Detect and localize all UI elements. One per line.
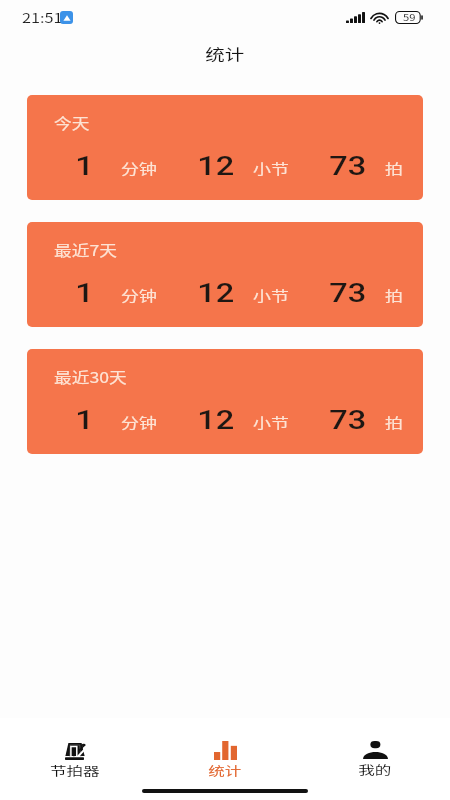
staticText: 小节 xyxy=(253,412,289,432)
staticText: 分钟 xyxy=(121,285,157,305)
staticText: 拍 xyxy=(385,285,403,305)
staticText: 节拍器 xyxy=(50,762,101,779)
button[interactable]: 今天 xyxy=(27,95,423,200)
button[interactable]: Statistics xyxy=(150,718,300,779)
staticText: 拍 xyxy=(385,158,403,178)
button[interactable]: 最近30天 xyxy=(27,349,423,454)
other: Statistics xyxy=(214,741,237,760)
staticText: 12 xyxy=(197,278,235,308)
staticText: 统计 xyxy=(205,43,246,65)
button[interactable]: Metronome xyxy=(0,718,150,779)
staticText: 21:51 xyxy=(22,8,63,27)
staticText: 1 xyxy=(75,405,94,435)
staticText: 73 xyxy=(329,151,367,181)
staticText: 统计 xyxy=(208,762,243,779)
other: Metronome xyxy=(65,741,85,760)
staticText: 12 xyxy=(197,151,235,181)
staticText: 73 xyxy=(329,278,367,308)
staticText: 73 xyxy=(329,405,367,435)
button[interactable]: 最近7天 xyxy=(27,222,423,327)
staticText: 分钟 xyxy=(121,412,157,432)
staticText: 最近30天 xyxy=(54,366,127,387)
staticText: 最近7天 xyxy=(54,239,117,260)
staticText: 分钟 xyxy=(121,158,157,178)
staticText: 我的 xyxy=(358,761,393,778)
staticText: 拍 xyxy=(385,412,403,432)
staticText: 小节 xyxy=(253,285,289,305)
staticText: 59 xyxy=(403,11,415,24)
staticText: 今天 xyxy=(54,112,89,133)
staticText: 1 xyxy=(75,278,94,308)
staticText: 1 xyxy=(75,151,94,181)
staticText: 12 xyxy=(197,405,235,435)
button[interactable]: Profile xyxy=(300,718,450,778)
staticText: 小节 xyxy=(253,158,289,178)
other: Profile xyxy=(363,741,388,759)
